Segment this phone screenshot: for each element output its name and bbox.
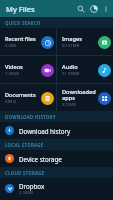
- staticText: Device storage: [19, 155, 62, 163]
- staticText: Videos: [5, 63, 23, 71]
- staticText: CLOUD STORAGE: [5, 170, 45, 176]
- button[interactable]: More options: [100, 3, 111, 14]
- button[interactable]: Documents: [0, 84, 56, 111]
- staticText: 60.01MB: [62, 43, 80, 49]
- button[interactable]: Download history: [0, 122, 113, 139]
- staticText: 1.08GB: [5, 71, 20, 77]
- staticText: Dropbox: [19, 182, 45, 190]
- staticText: QUICK SEARCH: [5, 20, 41, 26]
- staticText: My Files: [6, 4, 35, 14]
- staticText: Images: [62, 35, 82, 43]
- staticText: Recent files: [5, 35, 36, 43]
- button[interactable]: Dropbox: [0, 178, 113, 199]
- staticText: Documents: [5, 91, 36, 99]
- staticText: Downloaded apps: [62, 88, 96, 102]
- button[interactable]: Downloaded apps: [57, 84, 113, 111]
- button[interactable]: Audio: [57, 56, 113, 83]
- button[interactable]: Device storage: [0, 150, 113, 167]
- button[interactable]: Recent files: [0, 28, 56, 55]
- button[interactable]: Images: [57, 28, 113, 55]
- staticText: DOWNLOAD HISTORY: [5, 114, 56, 120]
- staticText: Download history: [19, 127, 71, 135]
- button[interactable]: Videos: [0, 56, 56, 83]
- staticText: 372MB: [62, 102, 76, 108]
- staticText: 21.93MB: [62, 71, 80, 77]
- staticText: Audio: [62, 63, 78, 71]
- button[interactable]: Search: [74, 2, 87, 15]
- staticText: LOCAL STORAGE: [5, 142, 44, 148]
- button[interactable]: Storage usage: [87, 2, 100, 15]
- staticText: 589 B: [5, 99, 16, 105]
- staticText: 2.34GB: [19, 190, 34, 196]
- staticText: 0.00B: [5, 43, 17, 49]
